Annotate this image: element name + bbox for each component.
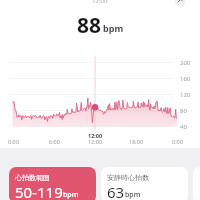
staticText: 18:00 [129, 138, 144, 145]
staticText: 12:00 [88, 132, 103, 139]
staticText: 120 [180, 91, 191, 99]
staticText: 80 [180, 107, 187, 115]
staticText: 安静時心拍数 [107, 173, 149, 182]
button[interactable] [193, 167, 200, 200]
staticText: bpm [125, 190, 141, 200]
staticText: 40 [180, 123, 187, 131]
staticText: 12:00 [88, 138, 103, 145]
button[interactable]: Expand chart [174, 0, 186, 6]
staticText: 50-119 [15, 182, 63, 200]
staticText: bpm [103, 22, 124, 34]
staticText: bpm [63, 190, 79, 200]
staticText: 63 [107, 182, 125, 200]
staticText: 6:00 [49, 138, 60, 145]
button[interactable]: 安静時心拍数 [101, 167, 188, 200]
staticText: 0:00 [8, 138, 19, 145]
staticText: 12:00 [92, 0, 108, 5]
staticText: 0:00 [172, 138, 183, 145]
staticText: 88 [77, 11, 102, 40]
staticText: 200 [180, 59, 191, 67]
button[interactable]: 心拍数範囲 [9, 167, 96, 200]
staticText: 160 [180, 75, 191, 83]
staticText: 心拍数範囲 [15, 173, 50, 182]
